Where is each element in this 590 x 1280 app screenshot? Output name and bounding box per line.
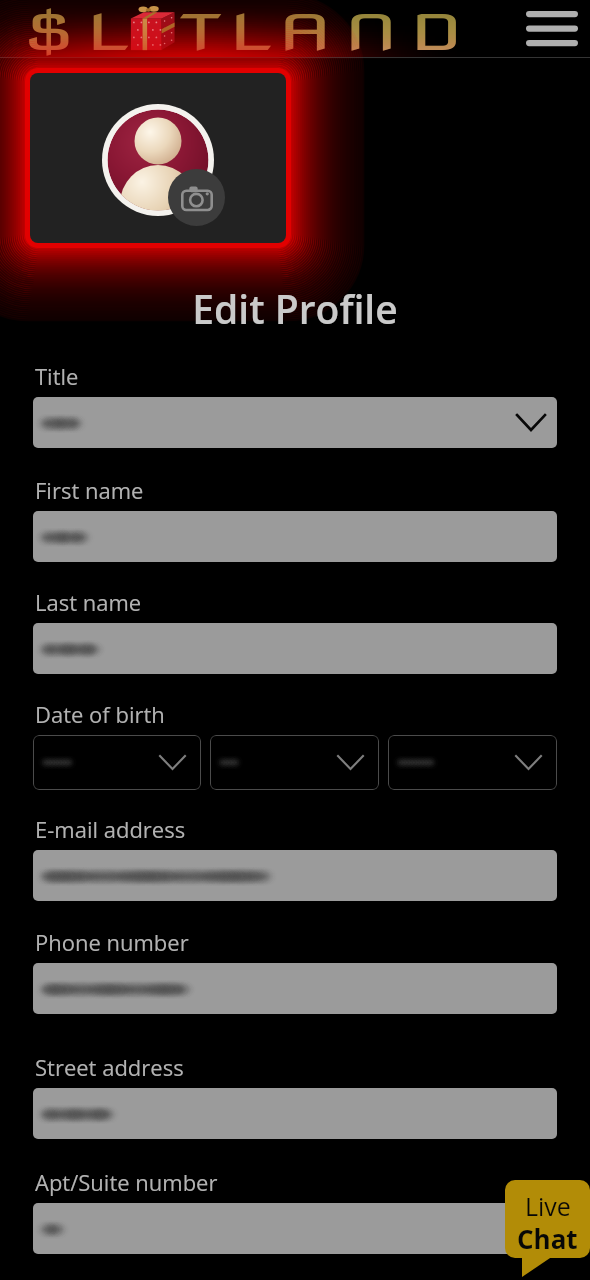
staticText: Live <box>525 1189 571 1223</box>
button[interactable]: Select <box>210 735 379 790</box>
staticText: Phone number <box>35 927 189 957</box>
staticText: E-mail address <box>35 814 186 844</box>
staticText: Edit Profile <box>0 282 590 335</box>
staticText: TLAND <box>180 3 476 61</box>
staticText: First name <box>35 475 144 505</box>
button[interactable]: Menu <box>520 0 584 58</box>
button[interactable] <box>33 511 557 562</box>
staticText: Date of birth <box>35 699 165 729</box>
staticText: $L <box>23 3 140 61</box>
staticText: Chat <box>517 1221 578 1256</box>
button[interactable] <box>33 850 557 901</box>
button[interactable] <box>33 1088 557 1139</box>
button[interactable] <box>33 963 557 1014</box>
button[interactable]: Select <box>388 735 557 790</box>
button[interactable] <box>33 1203 557 1254</box>
staticText: Apt/Suite number <box>35 1167 218 1197</box>
button[interactable]: Take photo <box>168 169 225 226</box>
button[interactable]: Live Chat <box>505 1180 590 1280</box>
button[interactable]: Change profile photo <box>30 73 286 243</box>
staticText: Street address <box>35 1052 184 1082</box>
staticText: Last name <box>35 587 142 617</box>
button[interactable]: Select <box>33 735 201 790</box>
staticText: Title <box>35 361 79 391</box>
button[interactable] <box>33 623 557 674</box>
button[interactable] <box>33 397 557 448</box>
